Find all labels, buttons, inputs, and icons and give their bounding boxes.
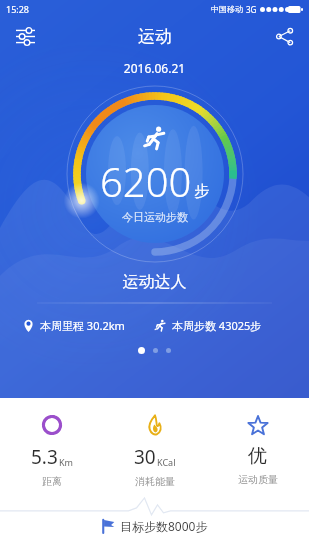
staticText: 中国移动 bbox=[211, 4, 243, 14]
staticText: 3G bbox=[246, 4, 257, 15]
staticText: 6200 bbox=[100, 154, 192, 208]
staticText: 今日运动步数 bbox=[122, 210, 188, 224]
staticText: 距离 bbox=[42, 475, 62, 488]
staticText: Km bbox=[59, 456, 73, 468]
staticText: 步 bbox=[194, 182, 209, 201]
button[interactable]: 本周步数 43025步 bbox=[154, 318, 287, 333]
button[interactable]: Page 3 bbox=[166, 348, 171, 353]
staticText: 本周里程 30.2km bbox=[40, 318, 125, 333]
staticText: 15:28 bbox=[6, 3, 30, 15]
staticText: 运动达人 bbox=[0, 272, 309, 292]
staticText: KCal bbox=[157, 456, 176, 468]
button[interactable]: Page 2 bbox=[153, 348, 158, 353]
staticText: 5.3 bbox=[31, 444, 58, 470]
button[interactable]: Filter settings bbox=[10, 21, 40, 51]
button[interactable]: Share bbox=[269, 21, 299, 51]
staticText: 30 bbox=[134, 444, 156, 470]
button[interactable]: Page 1 bbox=[138, 347, 145, 354]
staticText: 消耗能量 bbox=[135, 475, 175, 488]
button[interactable]: 5.3 bbox=[0, 414, 103, 488]
staticText: 目标步数8000步 bbox=[120, 518, 208, 534]
button[interactable]: 优 bbox=[206, 414, 309, 486]
staticText: 2016.06.21 bbox=[0, 60, 309, 76]
staticText: 优 bbox=[248, 444, 267, 468]
staticText: 本周步数 43025步 bbox=[172, 318, 262, 333]
staticText: 运动 bbox=[138, 26, 172, 47]
button[interactable]: 本周里程 30.2km bbox=[22, 318, 154, 333]
button[interactable]: 目标步数8000步 bbox=[0, 501, 309, 550]
button[interactable]: 30 bbox=[103, 414, 206, 488]
staticText: 运动质量 bbox=[238, 473, 278, 486]
